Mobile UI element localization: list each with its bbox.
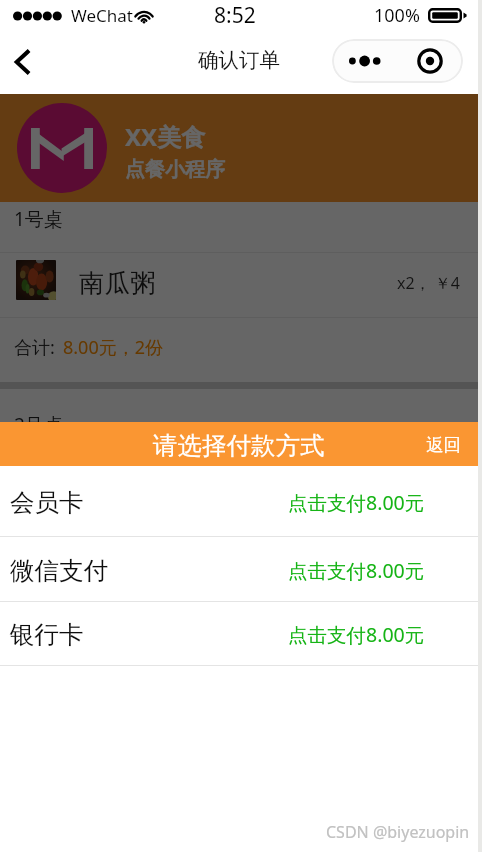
staticText: 8:52 — [214, 1, 256, 30]
staticText: 点餐小程序 — [125, 157, 225, 182]
button[interactable]: 微信支付 — [0, 537, 478, 601]
button[interactable]: 返回 — [408, 422, 478, 466]
staticText: 点击支付8.00元 — [288, 489, 425, 516]
staticText: 会员卡 — [10, 487, 84, 518]
staticText: 2号桌 — [14, 412, 63, 422]
staticText: 点击支付8.00元 — [288, 557, 425, 584]
staticText: XX美食 — [125, 120, 206, 153]
button[interactable]: 会员卡 — [0, 466, 478, 536]
button[interactable]: 银行卡 — [0, 602, 478, 665]
staticText: WeChat — [71, 4, 133, 27]
staticText: 微信支付 — [10, 555, 108, 586]
staticText: CSDN @biyezuopin — [326, 821, 470, 843]
staticText: 点击支付8.00元 — [288, 621, 425, 648]
staticText: x2， ￥4 — [397, 272, 460, 294]
staticText: 请选择付款方式 — [153, 430, 325, 461]
button[interactable]: Back — [2, 42, 42, 82]
staticText: 合计: — [14, 335, 55, 360]
button[interactable]: More options — [332, 39, 397, 83]
button[interactable]: Close mini program — [397, 39, 463, 83]
staticText: 100% — [374, 3, 420, 28]
staticText: 南瓜粥 — [79, 267, 156, 299]
staticText: 银行卡 — [10, 619, 84, 650]
staticText: 8.00元，2份 — [63, 335, 164, 360]
staticText: 返回 — [426, 434, 461, 456]
staticText: 确认订单 — [198, 47, 280, 73]
staticText: 1号桌 — [14, 206, 63, 232]
